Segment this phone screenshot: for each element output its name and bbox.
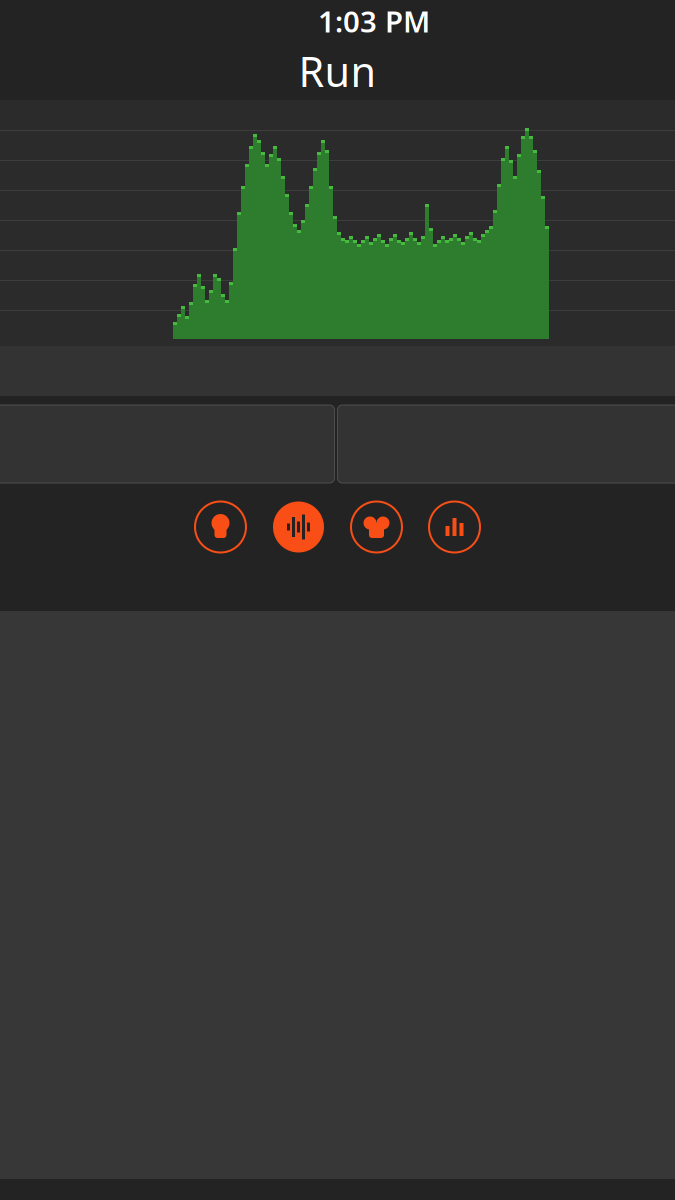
button[interactable]: Elevation: [268, 497, 328, 557]
button[interactable]: Analysis: [424, 497, 484, 557]
staticText: Run: [298, 44, 376, 98]
button[interactable]: Map: [190, 497, 250, 557]
staticText: 1:03 PM: [318, 1, 430, 40]
button[interactable]: Heart rate: [346, 497, 406, 557]
